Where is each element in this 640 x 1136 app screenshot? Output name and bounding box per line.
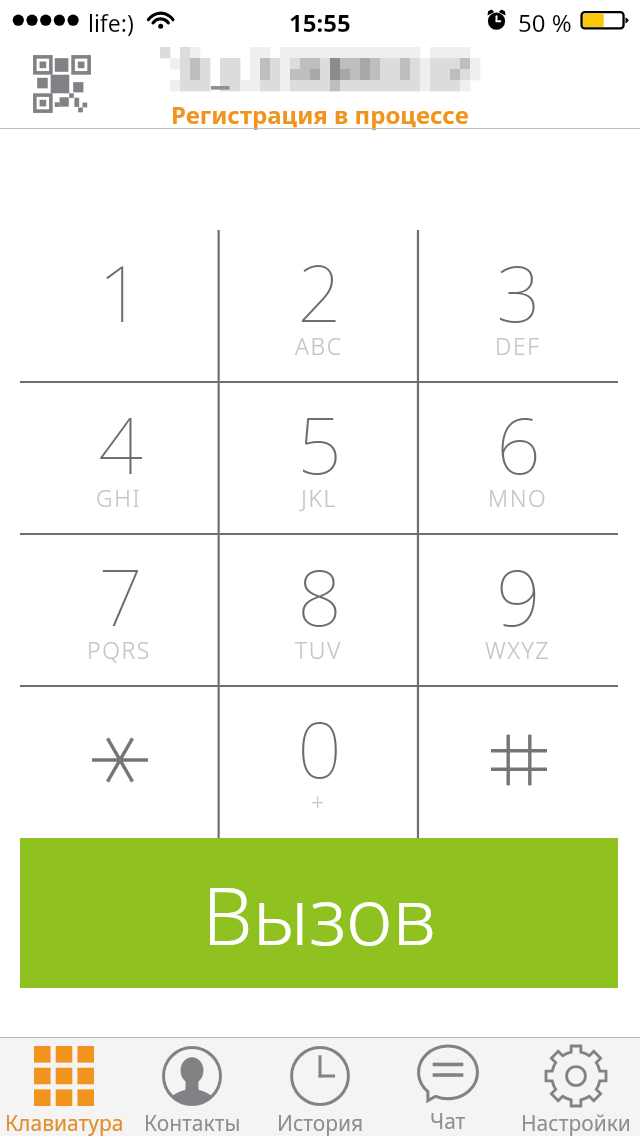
staticText: GHI <box>96 482 142 513</box>
staticText: Настройки <box>521 1109 631 1136</box>
staticText: TUV <box>295 634 342 665</box>
button[interactable]: 9 <box>419 534 618 686</box>
staticText: life:) <box>88 7 134 38</box>
staticText: 7 <box>98 543 143 649</box>
staticText: + <box>311 786 326 817</box>
button[interactable]: Настройки <box>512 1038 640 1136</box>
staticText: MNO <box>488 482 548 513</box>
button[interactable] <box>20 686 220 838</box>
button[interactable]: 2 <box>220 230 419 382</box>
staticText: Вызов <box>202 859 436 968</box>
button[interactable]: 3 <box>419 230 618 382</box>
button[interactable]: Чат <box>384 1038 512 1136</box>
staticText: Клавиатура <box>5 1109 124 1136</box>
staticText: 2 <box>297 239 342 345</box>
button[interactable]: 4 <box>20 382 220 534</box>
button[interactable]: 7 <box>20 534 220 686</box>
button[interactable]: 6 <box>419 382 618 534</box>
staticText: История <box>277 1109 364 1136</box>
staticText: WXYZ <box>485 634 551 665</box>
staticText: 1 <box>98 239 143 345</box>
button[interactable]: Контакты <box>128 1038 256 1136</box>
button[interactable]: Вызов <box>20 838 618 988</box>
button[interactable] <box>419 686 618 838</box>
staticText: DEF <box>495 330 541 361</box>
staticText: Чат <box>430 1107 466 1136</box>
button[interactable]: QR code <box>16 44 108 124</box>
button[interactable]: 0 <box>220 686 419 838</box>
staticText: ABC <box>295 330 343 361</box>
staticText: 0 <box>297 695 342 801</box>
staticText: Регистрация в процессе <box>171 98 469 131</box>
staticText: 6 <box>496 391 541 497</box>
button[interactable]: 1 <box>20 230 220 382</box>
button[interactable]: 5 <box>220 382 419 534</box>
staticText: 8 <box>297 543 342 649</box>
staticText: 9 <box>496 543 541 649</box>
staticText: JKL <box>301 482 337 513</box>
staticText: 50 % <box>518 6 572 39</box>
button[interactable]: Клавиатура <box>0 1038 128 1136</box>
button[interactable]: 8 <box>220 534 419 686</box>
staticText: 15:55 <box>289 6 351 39</box>
button[interactable]: История <box>256 1038 384 1136</box>
staticText: PQRS <box>87 634 151 665</box>
staticText: 3 <box>496 239 541 345</box>
staticText: 4 <box>98 391 143 497</box>
staticText: 5 <box>297 391 342 497</box>
staticText: Контакты <box>144 1109 241 1136</box>
